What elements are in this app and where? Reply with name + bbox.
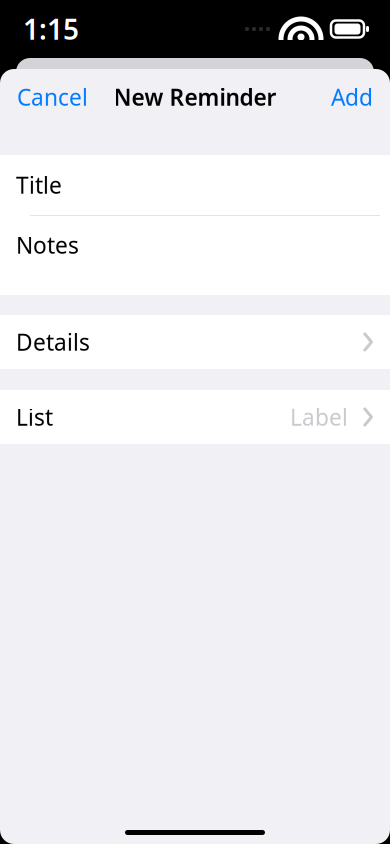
staticText: Title (16, 170, 62, 200)
button[interactable]: Add (325, 74, 379, 120)
staticText: Add (331, 82, 373, 112)
staticText: Cancel (17, 82, 88, 112)
button[interactable]: List (0, 390, 390, 444)
staticText: Label (290, 402, 348, 432)
staticText: New Reminder (113, 82, 276, 112)
staticText: Notes (16, 230, 79, 260)
staticText: List (16, 402, 53, 432)
button[interactable]: Cancel (11, 74, 94, 120)
button[interactable]: Details (0, 315, 390, 369)
staticText: Details (16, 327, 90, 357)
staticText: 1:15 (23, 10, 79, 48)
